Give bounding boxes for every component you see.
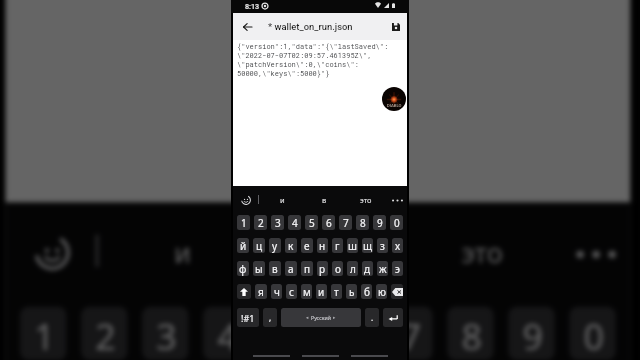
button[interactable]: ь <box>346 284 357 299</box>
button[interactable]: 4 <box>288 215 301 230</box>
button[interactable]: а <box>285 261 297 276</box>
button[interactable]: д <box>362 261 373 276</box>
button[interactable]: з <box>377 238 388 253</box>
button[interactable]: Home <box>296 347 345 360</box>
staticText: 50000,\"keys\":5000}"} <box>237 69 330 78</box>
button[interactable]: 0 <box>569 306 616 360</box>
button[interactable]: ц <box>253 238 265 253</box>
staticText: 7 <box>400 310 422 360</box>
button[interactable]: ч <box>271 284 282 299</box>
staticText: а <box>288 262 294 276</box>
staticText: 5 <box>278 310 300 360</box>
button[interactable]: 7 <box>339 215 352 230</box>
button[interactable]: ю <box>376 284 387 299</box>
button[interactable]: 5 <box>305 215 318 230</box>
button[interactable]: !#1 <box>237 308 259 327</box>
button[interactable]: ф <box>237 261 249 276</box>
button[interactable]: 8 <box>356 215 369 230</box>
button[interactable]: 7 <box>386 306 433 360</box>
button[interactable]: и <box>106 202 257 299</box>
button[interactable]: м <box>301 284 312 299</box>
button[interactable]: это <box>408 202 558 299</box>
button[interactable]: т <box>331 284 342 299</box>
staticText: ш <box>348 239 357 253</box>
button[interactable]: Emoji <box>23 224 81 281</box>
staticText: я <box>258 285 264 299</box>
button[interactable]: е <box>301 238 313 253</box>
staticText: ь <box>349 285 355 299</box>
button[interactable]: п <box>301 261 313 276</box>
button[interactable]: с <box>286 284 297 299</box>
button[interactable]: 1 <box>20 306 67 360</box>
staticText: ф <box>239 262 247 276</box>
button[interactable]: л <box>347 261 358 276</box>
staticText: в <box>322 195 327 205</box>
staticText: г <box>335 239 340 253</box>
button[interactable]: в <box>257 202 408 299</box>
staticText: 8 <box>461 310 483 360</box>
button[interactable]: 4 <box>203 306 250 360</box>
button[interactable]: 5 <box>264 306 311 360</box>
button[interactable]: ш <box>347 238 358 253</box>
staticText: 0 <box>394 216 400 230</box>
button[interactable]: ж <box>377 261 388 276</box>
button[interactable]: н <box>317 238 328 253</box>
button[interactable]: 2 <box>254 215 267 230</box>
button[interactable]: 8 <box>447 306 494 360</box>
button[interactable]: Shift <box>237 284 251 299</box>
button[interactable]: это <box>345 186 387 213</box>
staticText: п <box>304 262 311 276</box>
staticText: н <box>319 239 326 253</box>
button[interactable]: э <box>392 261 403 276</box>
button[interactable]: 6 <box>322 215 335 230</box>
button[interactable]: 9 <box>508 306 555 360</box>
button[interactable]: 1 <box>237 215 250 230</box>
button[interactable]: щ <box>362 238 373 253</box>
staticText: !#1 <box>241 312 255 324</box>
button[interactable]: Back <box>247 347 296 360</box>
button[interactable]: у <box>269 238 281 253</box>
button[interactable]: Enter <box>383 308 403 327</box>
button[interactable]: ы <box>253 261 265 276</box>
button[interactable]: More suggestions <box>387 190 407 210</box>
staticText: е <box>304 239 310 253</box>
staticText: у <box>272 239 278 253</box>
staticText: р <box>319 262 326 276</box>
staticText: т <box>334 285 339 299</box>
button[interactable]: р <box>317 261 328 276</box>
staticText: и <box>280 195 285 205</box>
button[interactable]: Save <box>386 17 405 36</box>
button[interactable]: , <box>263 308 277 327</box>
button[interactable]: Recent apps <box>345 347 394 360</box>
staticText: 1 <box>241 216 247 230</box>
staticText: с <box>289 285 294 299</box>
staticText: л <box>350 262 356 276</box>
button[interactable]: 3 <box>271 215 284 230</box>
button[interactable]: о <box>332 261 343 276</box>
button[interactable]: Back <box>238 17 257 36</box>
button[interactable]: к <box>285 238 297 253</box>
staticText: о <box>335 262 341 276</box>
button[interactable]: х <box>392 238 403 253</box>
button[interactable]: 9 <box>373 215 386 230</box>
button[interactable]: Backspace <box>391 284 403 299</box>
button[interactable]: в <box>303 186 345 213</box>
button[interactable]: г <box>332 238 343 253</box>
button[interactable]: 3 <box>142 306 189 360</box>
staticText: щ <box>363 239 372 253</box>
button[interactable]: . <box>365 308 379 327</box>
button[interactable]: в <box>269 261 281 276</box>
button[interactable]: Space <box>281 308 361 327</box>
button[interactable]: 6 <box>325 306 372 360</box>
button[interactable]: Emoji <box>238 192 254 208</box>
staticText: ы <box>255 262 263 276</box>
button[interactable]: и <box>316 284 327 299</box>
button[interactable]: More suggestions <box>558 217 630 288</box>
button[interactable]: б <box>361 284 372 299</box>
button[interactable]: я <box>255 284 267 299</box>
button[interactable]: Profile picture <box>382 87 406 111</box>
button[interactable]: й <box>237 238 249 253</box>
button[interactable]: 2 <box>81 306 128 360</box>
button[interactable]: и <box>261 186 303 213</box>
button[interactable]: 0 <box>390 215 403 230</box>
